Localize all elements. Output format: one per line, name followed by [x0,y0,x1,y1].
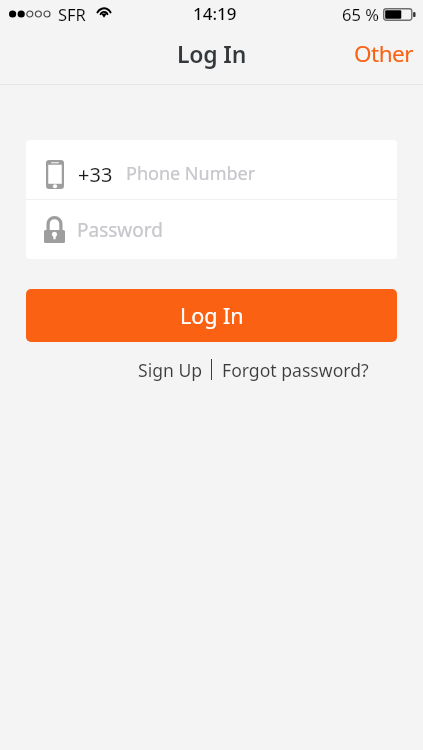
other: Phone [46,160,64,189]
button[interactable]: Log In [26,289,397,342]
staticText: Log In [180,301,244,330]
staticText: Phone Number [126,161,256,186]
other: Signal strength [9,10,52,18]
staticText: 65 % [342,3,379,25]
button[interactable]: Forgot password? [212,353,375,387]
staticText: Other [354,38,414,69]
button[interactable]: Sign Up [132,353,211,387]
staticText: Log In [177,38,247,69]
other: Wi-Fi [96,3,112,16]
staticText: Sign Up [138,358,203,382]
staticText: Forgot password? [222,358,369,382]
staticText: +33 [78,161,113,188]
button[interactable]: Other [343,30,423,77]
staticText: 14:19 [193,2,237,25]
staticText: SFR [58,3,86,25]
button[interactable]: Password [26,200,397,259]
other: Battery 65 percent [383,8,416,21]
other: Password [44,217,65,243]
button[interactable]: Phone [26,140,397,199]
staticText: Password [77,217,163,243]
